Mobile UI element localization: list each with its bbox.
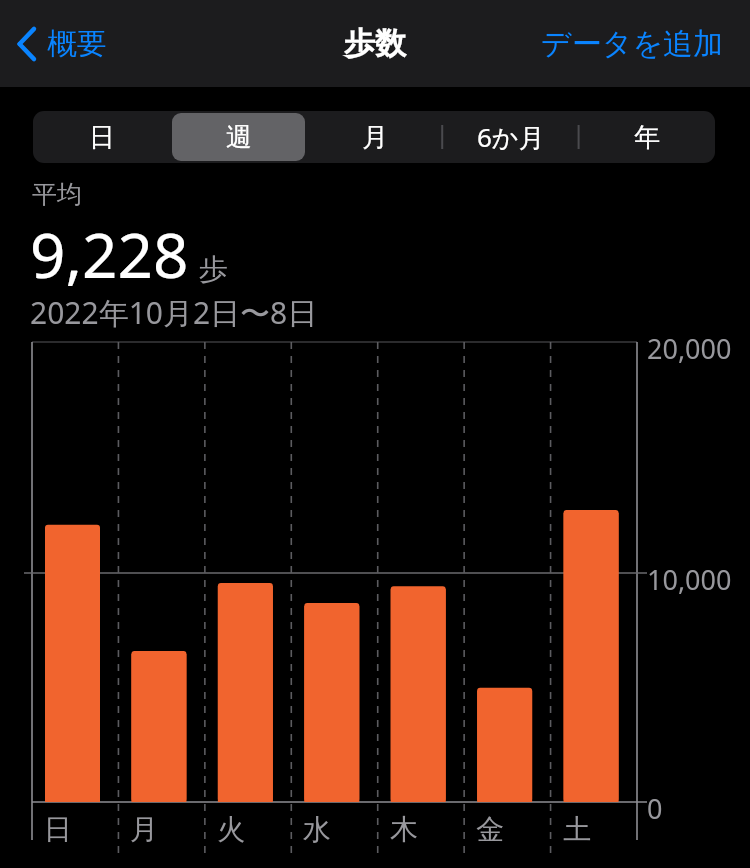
- button[interactable]: Back: [10, 17, 113, 71]
- staticText: 金: [476, 812, 504, 847]
- other: Back: [16, 26, 38, 62]
- staticText: 土: [563, 812, 591, 847]
- staticText: 2022年10月2日〜8日: [30, 292, 318, 333]
- staticText: 0: [647, 790, 663, 827]
- staticText: 月: [130, 812, 158, 847]
- staticText: 9,228: [30, 212, 189, 296]
- button[interactable]: 年: [581, 113, 713, 161]
- staticText: データを追加: [541, 25, 724, 63]
- staticText: 歩数: [344, 24, 406, 63]
- staticText: 日: [89, 121, 115, 154]
- button[interactable]: 6か月: [445, 113, 577, 161]
- staticText: 概要: [47, 25, 107, 63]
- staticText: 6か月: [477, 119, 545, 155]
- staticText: 10,000: [647, 561, 732, 598]
- staticText: 歩: [199, 251, 228, 288]
- staticText: 年: [634, 121, 660, 154]
- staticText: 木: [390, 812, 418, 847]
- staticText: 週: [226, 121, 252, 154]
- staticText: 20,000: [647, 330, 732, 367]
- staticText: 日: [44, 812, 72, 847]
- button[interactable]: 日: [35, 113, 168, 161]
- button[interactable]: 月: [309, 113, 441, 161]
- staticText: 月: [362, 121, 388, 154]
- staticText: 平均: [32, 179, 82, 210]
- staticText: 火: [217, 812, 245, 847]
- staticText: 水: [303, 812, 331, 847]
- button[interactable]: 週: [172, 113, 305, 161]
- button[interactable]: データを追加: [535, 17, 730, 71]
